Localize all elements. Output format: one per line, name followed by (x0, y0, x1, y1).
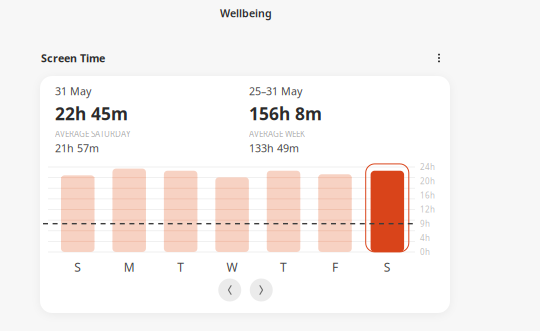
staticText: AVERAGE WEEK (249, 129, 305, 139)
staticText: 21h 57m (55, 141, 99, 155)
staticText: 20h (420, 176, 435, 186)
staticText: Wellbeing (220, 6, 272, 20)
button[interactable]: More options (428, 47, 450, 69)
staticText: 31 May (55, 84, 91, 98)
staticText: 22h 45m (55, 102, 128, 125)
staticText: W (227, 259, 238, 275)
staticText: 12h (420, 204, 435, 215)
staticText: 9h (420, 218, 430, 229)
staticText: T (280, 259, 287, 275)
staticText: AVERAGE SATURDAY (55, 129, 131, 139)
button[interactable]: Previous period (218, 278, 241, 301)
staticText: 156h 8m (249, 102, 322, 125)
staticText: 133h 49m (249, 141, 299, 155)
staticText: S (384, 259, 391, 275)
staticText: 16h (420, 190, 435, 201)
staticText: S (74, 259, 81, 275)
staticText: F (332, 259, 338, 275)
staticText: 25–31 May (249, 84, 302, 98)
staticText: Screen Time (41, 51, 105, 65)
staticText: T (177, 259, 184, 275)
staticText: 4h (420, 232, 430, 243)
button[interactable]: Next period (250, 278, 273, 301)
staticText: 24h (420, 162, 435, 172)
staticText: 0h (420, 247, 430, 257)
staticText: M (124, 259, 135, 275)
